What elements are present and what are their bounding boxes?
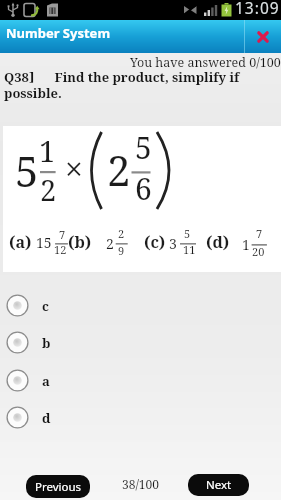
staticText: 9	[118, 243, 125, 258]
staticText: 12	[54, 242, 67, 257]
staticText: 1	[39, 131, 56, 170]
staticText: Number System	[6, 24, 111, 42]
staticText: 15	[36, 233, 52, 252]
button[interactable]: c	[6, 294, 96, 317]
button[interactable]: d	[6, 406, 96, 429]
staticText: (c)	[144, 231, 166, 253]
staticText: Previous	[35, 479, 82, 495]
button[interactable]: Next	[188, 474, 249, 496]
staticText: 5	[135, 127, 152, 168]
staticText: (a)	[9, 231, 32, 253]
staticText: 2	[118, 226, 125, 241]
staticText: a	[42, 372, 50, 390]
staticText: 13:09	[235, 0, 280, 17]
staticText: 7	[59, 227, 66, 242]
staticText: 11	[183, 242, 196, 257]
staticText: You have answered 0/100	[130, 54, 281, 71]
staticText: (b)	[68, 231, 92, 253]
staticText: 20	[252, 244, 265, 259]
staticText: 3	[169, 234, 177, 253]
button[interactable]: Previous	[26, 475, 90, 498]
staticText: 6	[135, 168, 152, 209]
staticText: 2	[106, 234, 114, 253]
staticText: (d)	[206, 231, 230, 253]
staticText: ×	[65, 147, 83, 191]
staticText: b	[42, 334, 51, 352]
staticText: c	[42, 297, 49, 315]
staticText: Q38] Find the product, simplify if possi…	[4, 68, 240, 101]
staticText: 2	[40, 170, 57, 209]
staticText: d	[42, 409, 51, 427]
staticText: 2	[107, 141, 131, 198]
button[interactable]: b	[6, 331, 96, 354]
button[interactable]: a	[6, 369, 96, 392]
staticText: 5	[15, 142, 39, 199]
staticText: 1	[242, 235, 250, 254]
staticText: Next	[206, 477, 232, 493]
staticText: 38/100	[122, 476, 159, 492]
staticText: 5	[184, 226, 191, 241]
staticText: 7	[256, 226, 263, 241]
button[interactable]	[245, 20, 281, 53]
